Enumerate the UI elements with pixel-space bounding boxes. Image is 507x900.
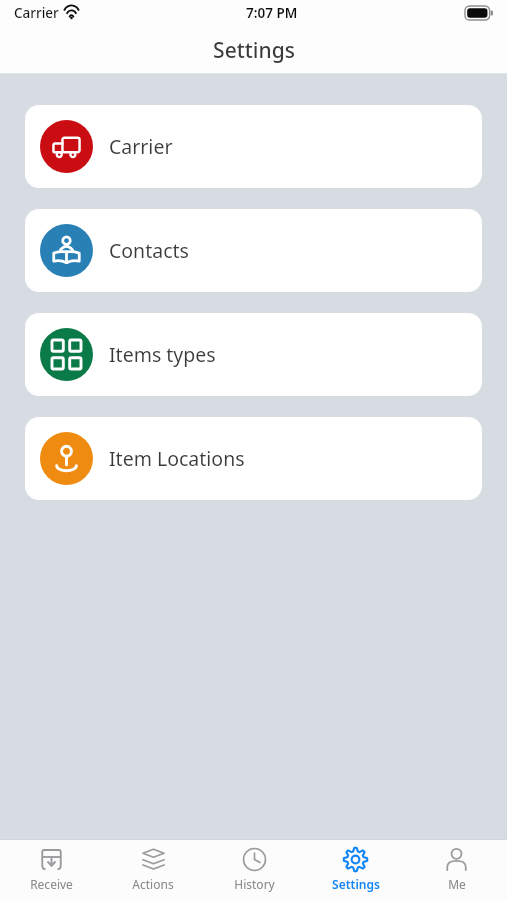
button[interactable]: Settings (305, 840, 406, 900)
staticText: Receive (30, 876, 73, 892)
staticText: Settings (213, 36, 295, 65)
staticText: Contacts (109, 237, 189, 264)
staticText: Items types (109, 341, 216, 368)
button[interactable]: Items types (25, 313, 482, 396)
button[interactable]: Item Locations (25, 417, 482, 500)
staticText: History (234, 876, 275, 892)
button[interactable]: Me (406, 840, 507, 900)
button[interactable]: Receive (0, 840, 102, 900)
button[interactable]: Contacts (25, 209, 482, 292)
staticText: Carrier (109, 133, 173, 160)
button[interactable]: Carrier (25, 105, 482, 188)
staticText: 7:07 PM (246, 4, 298, 22)
staticText: Settings (332, 876, 380, 892)
staticText: Actions (132, 876, 174, 892)
button[interactable]: Actions (102, 840, 204, 900)
staticText: Carrier (14, 4, 59, 22)
staticText: Item Locations (109, 445, 245, 472)
button[interactable]: History (204, 840, 305, 900)
staticText: Me (448, 876, 466, 892)
